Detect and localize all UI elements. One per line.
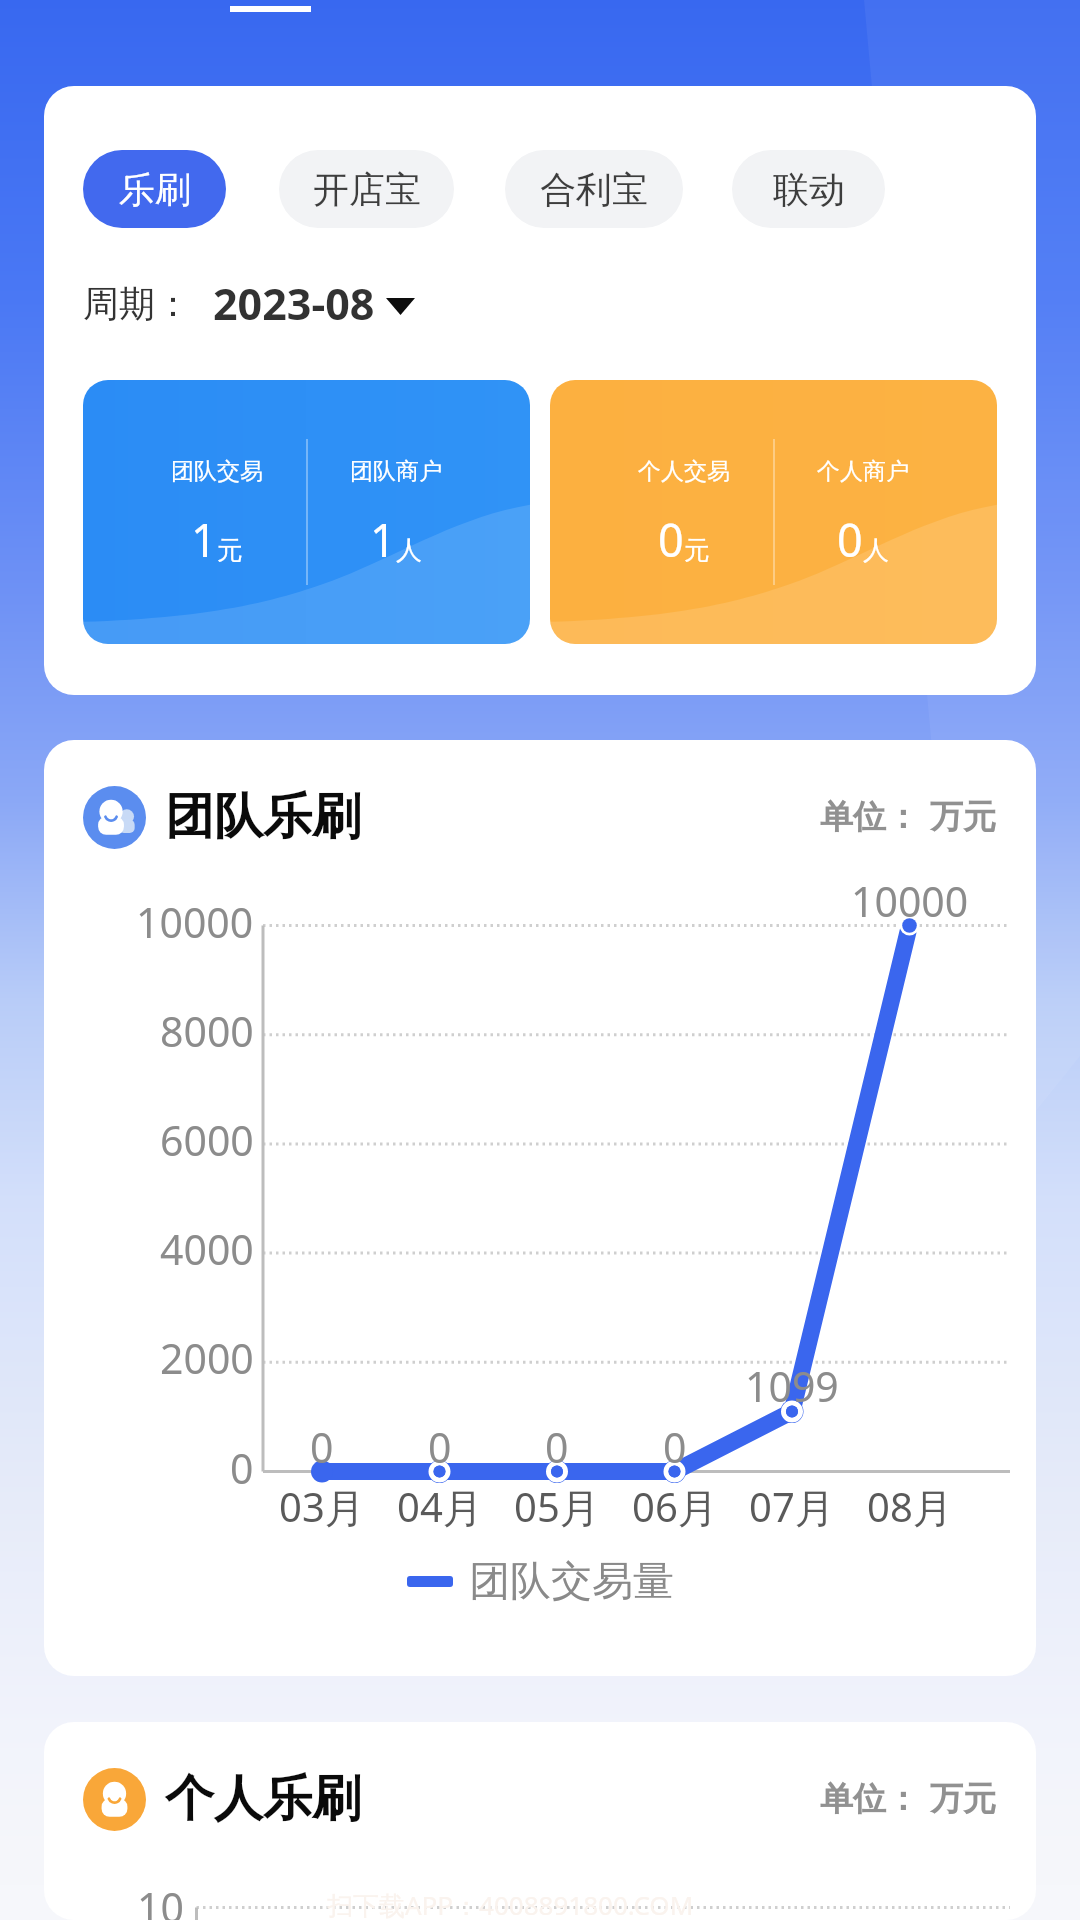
- staticText: 人: [863, 534, 889, 567]
- button[interactable]: 开店宝: [279, 150, 454, 228]
- staticText: 团队商户: [350, 457, 442, 486]
- staticText: 单位：: [820, 796, 919, 838]
- staticText: 0: [428, 1419, 452, 1471]
- staticText: 0: [663, 1419, 687, 1471]
- button[interactable]: 团队交易: [83, 380, 530, 644]
- staticText: 扫下载APP：4008891800.COM: [327, 1887, 694, 1920]
- staticText: 2023-08: [213, 274, 375, 333]
- staticText: 8000: [160, 1003, 254, 1055]
- button[interactable]: 乐刷: [83, 150, 226, 228]
- staticText: 乐刷: [119, 167, 191, 212]
- other: Team: [83, 786, 146, 849]
- staticText: 万元: [930, 1778, 996, 1820]
- staticText: 06月: [632, 1479, 718, 1531]
- staticText: 10000: [851, 873, 969, 925]
- staticText: 1: [191, 509, 217, 570]
- button[interactable]: 合利宝: [505, 150, 683, 228]
- staticText: 团队交易: [171, 457, 263, 486]
- other: Personal: [83, 1768, 146, 1831]
- staticText: 04月: [397, 1479, 483, 1531]
- staticText: 开店宝: [313, 167, 421, 212]
- button[interactable]: Personal: [83, 1767, 996, 1831]
- staticText: 10: [137, 1879, 184, 1920]
- staticText: 6000: [160, 1112, 254, 1164]
- staticText: 0: [230, 1440, 254, 1492]
- staticText: 4000: [160, 1221, 254, 1273]
- staticText: 0: [658, 509, 684, 570]
- staticText: 联动: [773, 167, 845, 212]
- staticText: 1099: [745, 1358, 839, 1410]
- staticText: 0: [310, 1419, 334, 1471]
- staticText: 人: [396, 534, 422, 567]
- staticText: 周期：: [83, 281, 191, 326]
- staticText: 10000: [136, 894, 254, 946]
- other: Choose period: [386, 298, 415, 315]
- button[interactable]: 周期：: [83, 272, 415, 334]
- staticText: 0: [837, 509, 863, 570]
- staticText: 0: [545, 1419, 569, 1471]
- staticText: 元: [217, 534, 243, 567]
- staticText: 元: [684, 534, 710, 567]
- staticText: 个人商户: [817, 457, 909, 486]
- staticText: 1: [370, 509, 396, 570]
- button[interactable]: 联动: [732, 150, 885, 228]
- button[interactable]: 个人交易: [550, 380, 997, 644]
- staticText: 合利宝: [540, 167, 648, 212]
- button[interactable]: Team: [83, 785, 996, 849]
- staticText: 2000: [160, 1330, 254, 1382]
- staticText: 05月: [514, 1479, 600, 1531]
- staticText: 07月: [749, 1479, 835, 1531]
- staticText: 个人乐刷: [165, 1768, 361, 1830]
- staticText: 团队乐刷: [165, 786, 361, 848]
- staticText: 08月: [867, 1479, 953, 1531]
- staticText: 单位：: [820, 1778, 919, 1820]
- staticText: 个人交易: [638, 457, 730, 486]
- staticText: 万元: [930, 796, 996, 838]
- staticText: 团队交易量: [469, 1556, 674, 1608]
- staticText: 03月: [279, 1479, 365, 1531]
